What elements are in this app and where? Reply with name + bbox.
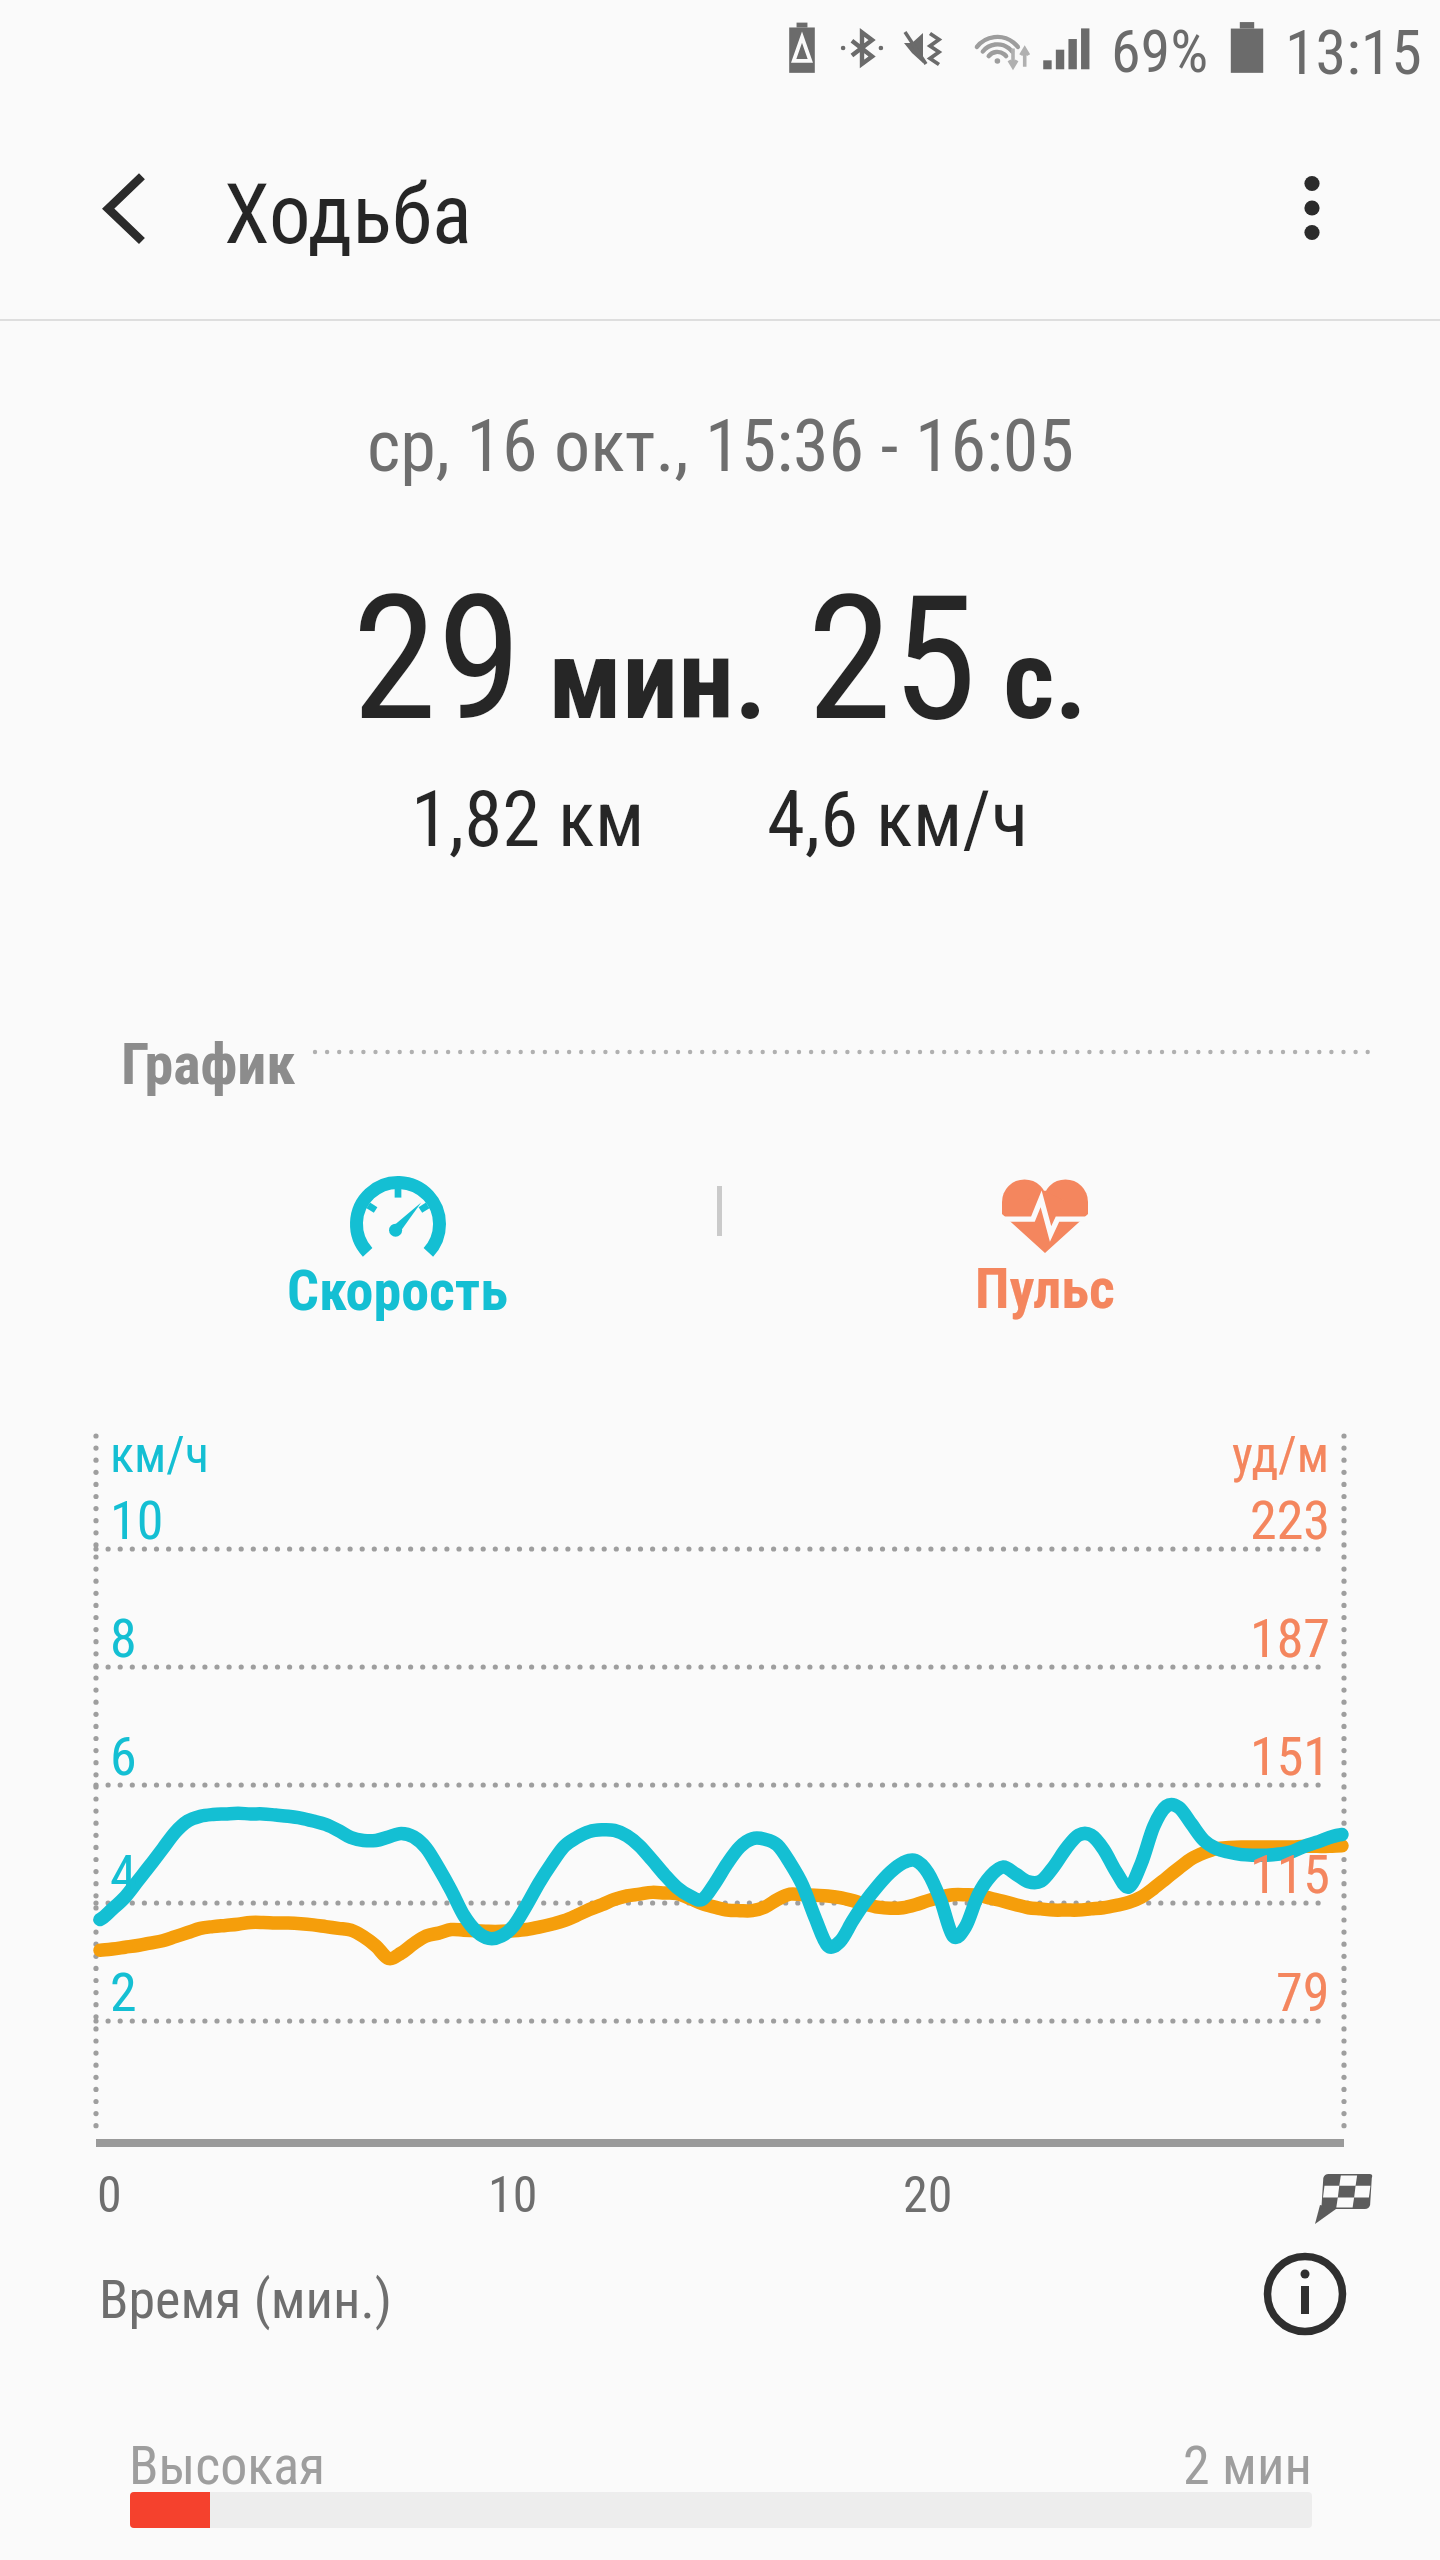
staticText: 69% [1111,16,1209,80]
staticText: 6 [110,1725,137,1788]
staticText: мин. [548,614,767,745]
button[interactable]: Скорость [191,1176,603,1336]
staticText: 29 [352,558,522,760]
staticText: 10 [488,2166,538,2225]
staticText: Высокая [129,2434,326,2497]
staticText: 115 [1250,1843,1330,1906]
staticText: 20 [903,2166,953,2225]
staticText: 25 [807,558,977,760]
staticText: 187 [1250,1607,1330,1670]
staticText: 4,6 км/ч [767,775,1029,865]
staticText: Время (мин.) [99,2268,393,2331]
staticText: Ходьба [224,166,472,263]
staticText: км/ч [110,1426,209,1485]
staticText: ср, 16 окт., 15:36 - 16:05 [367,404,1074,488]
button[interactable]: More options [1250,146,1374,270]
staticText: 8 [110,1607,137,1670]
staticText: 223 [1250,1489,1330,1552]
staticText: уд/м [1232,1426,1330,1485]
staticText: 13:15 [1285,16,1422,80]
staticText: 79 [1276,1961,1330,2024]
button[interactable]: Info [1253,2242,1357,2346]
staticText: 4 [110,1843,137,1906]
button[interactable]: Пульс [839,1175,1251,1335]
staticText: 0 [97,2166,122,2225]
staticText: с. [1003,614,1088,745]
staticText: 2 [110,1961,137,2024]
staticText: 1,82 км [411,775,645,865]
staticText: 10 [110,1489,164,1552]
staticText: 2 мин [1183,2434,1312,2497]
button[interactable]: Back [64,144,192,272]
staticText: 151 [1250,1725,1330,1788]
staticText: Скорость [287,1258,508,1324]
staticText: Пульс [975,1256,1115,1322]
staticText: График [121,1030,296,1098]
